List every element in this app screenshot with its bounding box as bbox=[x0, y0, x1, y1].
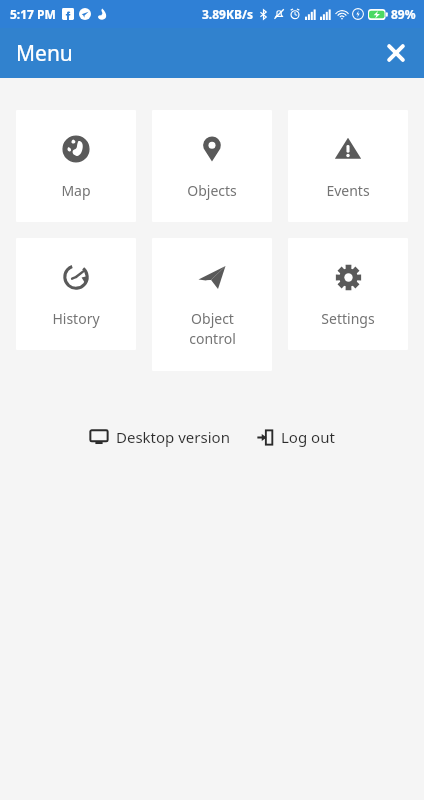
staticText: Objects bbox=[187, 181, 237, 200]
button[interactable]: Object control bbox=[152, 238, 272, 371]
staticText: Menu bbox=[16, 39, 73, 68]
staticText: Map bbox=[61, 181, 91, 200]
staticText: 5:17 PM bbox=[10, 6, 56, 22]
button[interactable]: Map bbox=[16, 110, 136, 222]
staticText: Log out bbox=[281, 427, 335, 447]
button[interactable]: History bbox=[16, 238, 136, 350]
staticText: Settings bbox=[321, 309, 375, 328]
staticText: Events bbox=[326, 181, 370, 200]
button[interactable]: Events bbox=[288, 110, 408, 222]
staticText: History bbox=[52, 309, 100, 328]
button[interactable]: Settings bbox=[288, 238, 408, 350]
button[interactable]: Desktop version bbox=[86, 421, 234, 453]
staticText: Desktop version bbox=[116, 427, 230, 447]
button[interactable]: Objects bbox=[152, 110, 272, 222]
staticText: 3.89KB/s bbox=[202, 6, 253, 22]
staticText: Object control bbox=[189, 309, 236, 349]
button[interactable]: Log out bbox=[252, 421, 339, 453]
button[interactable]: Close bbox=[376, 33, 416, 73]
staticText: 89% bbox=[391, 6, 416, 22]
